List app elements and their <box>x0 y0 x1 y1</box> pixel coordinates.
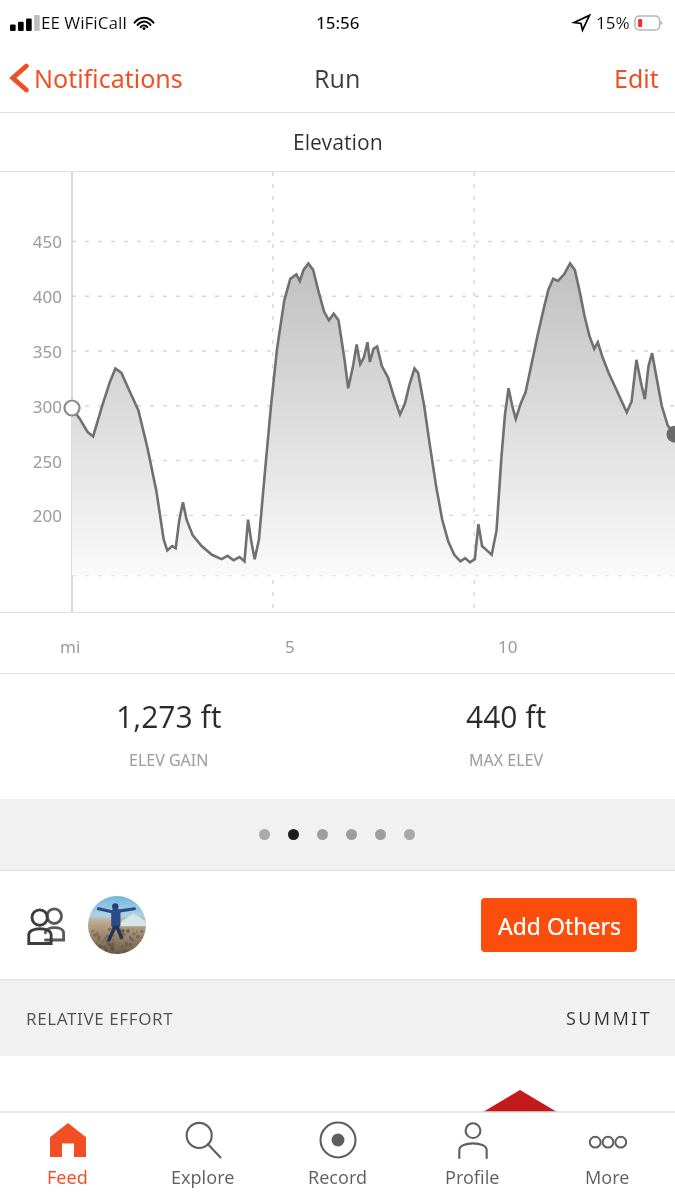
staticText: More <box>585 1165 630 1190</box>
staticText: Add Others <box>498 910 621 941</box>
button[interactable]: Explore <box>135 1112 270 1200</box>
staticText: RELATIVE EFFORT <box>26 1007 174 1030</box>
staticText: 15:56 <box>316 11 360 34</box>
staticText: 10 <box>498 635 518 658</box>
button[interactable]: Profile <box>405 1112 540 1200</box>
staticText: SUMMIT <box>566 1006 653 1031</box>
staticText: mi <box>60 635 81 658</box>
button[interactable]: Participants <box>22 903 74 947</box>
staticText: ELEV GAIN <box>129 749 209 771</box>
button[interactable]: Add Others <box>481 898 637 952</box>
staticText: Notifications <box>34 61 183 95</box>
staticText: Feed <box>47 1165 88 1190</box>
staticText: 1,273 ft <box>116 696 222 737</box>
staticText: EE WiFiCall <box>41 11 127 34</box>
staticText: 350 <box>0 340 62 363</box>
button[interactable]: Edit <box>598 53 675 103</box>
staticText: 400 <box>0 285 62 308</box>
staticText: 250 <box>0 450 62 473</box>
staticText: Run <box>314 61 361 95</box>
button[interactable]: More <box>540 1112 675 1200</box>
staticText: 450 <box>0 230 62 253</box>
staticText: Edit <box>614 61 659 95</box>
staticText: Record <box>308 1165 368 1190</box>
staticText: 5 <box>285 635 295 658</box>
staticText: 200 <box>0 504 62 527</box>
staticText: Profile <box>445 1165 500 1190</box>
staticText: MAX ELEV <box>469 749 544 771</box>
staticText: 440 ft <box>466 696 547 737</box>
staticText: Explore <box>171 1165 235 1190</box>
staticText: 300 <box>0 395 62 418</box>
button[interactable]: RELATIVE EFFORT <box>0 980 675 1056</box>
button[interactable]: Athlete avatar <box>88 896 146 954</box>
button[interactable]: Notifications <box>0 53 193 103</box>
button[interactable]: Feed <box>0 1112 135 1200</box>
staticText: Elevation <box>293 128 383 157</box>
staticText: 15% <box>596 11 630 34</box>
button[interactable]: Record <box>270 1112 405 1200</box>
